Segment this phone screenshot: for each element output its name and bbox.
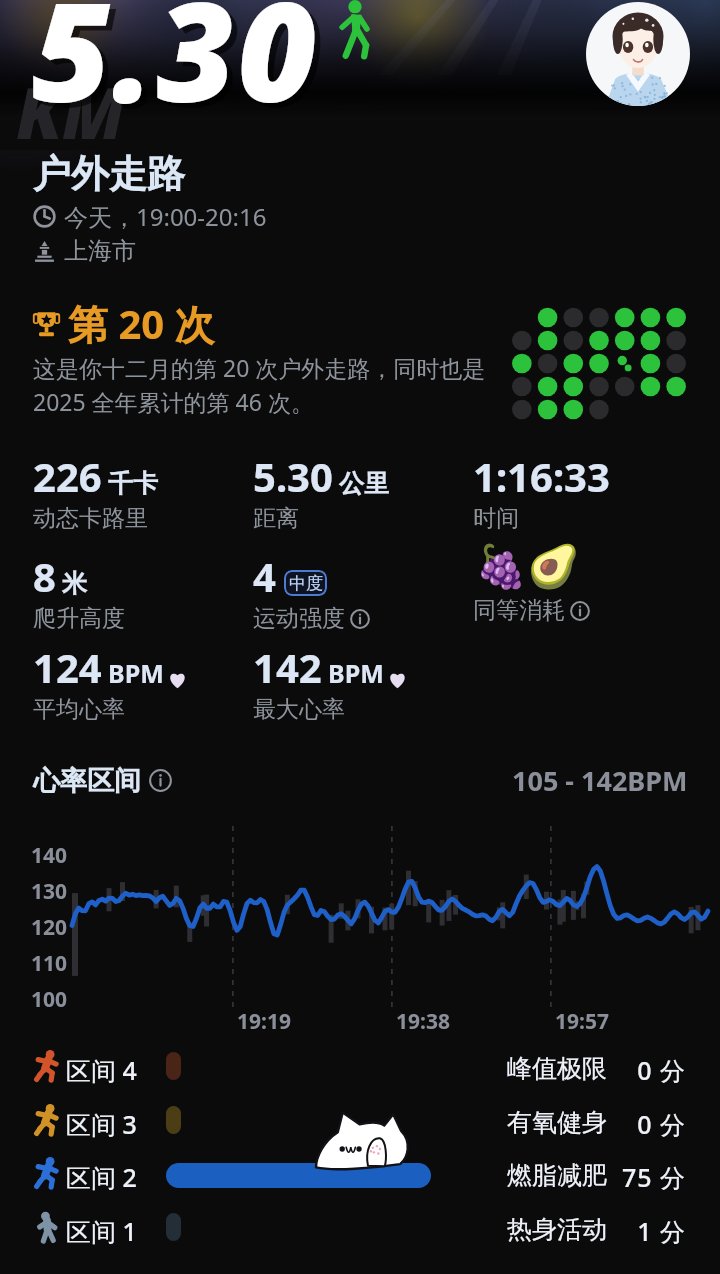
staticText: 226 [33, 449, 102, 503]
staticText: 热身活动 [507, 1214, 607, 1245]
button[interactable]: 4 [253, 549, 370, 633]
button[interactable]: 8 [33, 549, 125, 633]
staticText: 19:57 [555, 1007, 609, 1036]
staticText: 距离 [253, 504, 299, 533]
staticText: 最大心率 [253, 695, 345, 724]
staticText: 124 [33, 640, 102, 694]
button[interactable]: 区间 4 [0, 1040, 720, 1093]
staticText: 105 - 142BPM [512, 762, 688, 799]
button[interactable]: 124 [33, 640, 187, 724]
staticText: 0 分 [605, 1053, 686, 1087]
staticText: 120 [22, 913, 67, 942]
button[interactable]: 户外走路 [33, 150, 267, 266]
staticText: 130 [22, 877, 67, 906]
staticText: 142 [253, 640, 322, 694]
staticText: 时间 [473, 504, 519, 533]
staticText: BPM [108, 656, 164, 690]
staticText: 燃脂减肥 [507, 1160, 607, 1191]
staticText: 5.30 [253, 449, 333, 503]
button[interactable]: 区间 1 [0, 1201, 720, 1254]
staticText: 米 [62, 568, 87, 599]
staticText: BPM [328, 656, 384, 690]
button[interactable]: 第 20 次 [31, 296, 215, 351]
button[interactable]: 142 [253, 640, 407, 724]
button[interactable]: 区间 2 [0, 1147, 720, 1200]
staticText: 千卡 [108, 468, 158, 499]
staticText: 平均心率 [33, 695, 125, 724]
staticText: 75 分 [605, 1160, 686, 1194]
staticText: 100 [22, 985, 67, 1014]
staticText: KM [16, 64, 125, 159]
button[interactable]: 5.30 [253, 449, 389, 533]
staticText: 同等消耗 [473, 596, 565, 625]
staticText: 公里 [339, 468, 389, 499]
staticText: 运动强度 [253, 604, 345, 633]
staticText: 5.30 [38, 0, 325, 147]
staticText: 这是你十二月的第 20 次户外走路，同时也是 2025 全年累计的第 46 次。 [33, 352, 486, 418]
button[interactable]: More information [570, 601, 590, 621]
other: Walking [332, 0, 378, 58]
staticText: 有氧健身 [507, 1107, 607, 1138]
staticText: 区间 4 [66, 1053, 137, 1087]
staticText: 动态卡路里 [33, 504, 148, 533]
staticText: 8 [33, 549, 56, 603]
staticText: 1:16:33 [473, 449, 610, 503]
button[interactable]: 区间 3 [0, 1094, 720, 1147]
staticText: 区间 2 [66, 1160, 137, 1194]
staticText: 区间 3 [66, 1107, 137, 1141]
staticText: 19:38 [396, 1007, 450, 1036]
staticText: 峰值极限 [507, 1053, 607, 1084]
staticText: 爬升高度 [33, 604, 125, 633]
staticText: 🍇🥑 [475, 542, 580, 591]
staticText: 1 分 [605, 1214, 686, 1248]
button[interactable]: Profile [586, 2, 690, 106]
button[interactable]: 中度 [284, 570, 327, 596]
button[interactable]: More information [149, 769, 172, 792]
staticText: 户外走路 [33, 150, 185, 198]
button[interactable]: 1:16:33 [473, 449, 610, 533]
staticText: 区间 1 [66, 1214, 137, 1248]
button[interactable]: 226 [33, 449, 158, 533]
button[interactable]: More information [350, 609, 370, 629]
staticText: 110 [22, 949, 67, 978]
staticText: 第 20 次 [68, 296, 215, 351]
staticText: 今天，19:00-20:16 [64, 200, 267, 233]
staticText: 心率区间 [33, 764, 141, 798]
staticText: 19:19 [237, 1007, 291, 1036]
staticText: 0 分 [605, 1107, 686, 1141]
staticText: 140 [22, 841, 67, 870]
staticText: 5.30 [32, 0, 319, 142]
staticText: 中度 [289, 573, 323, 594]
staticText: 4 [253, 549, 276, 603]
staticText: 上海市 [64, 236, 136, 266]
